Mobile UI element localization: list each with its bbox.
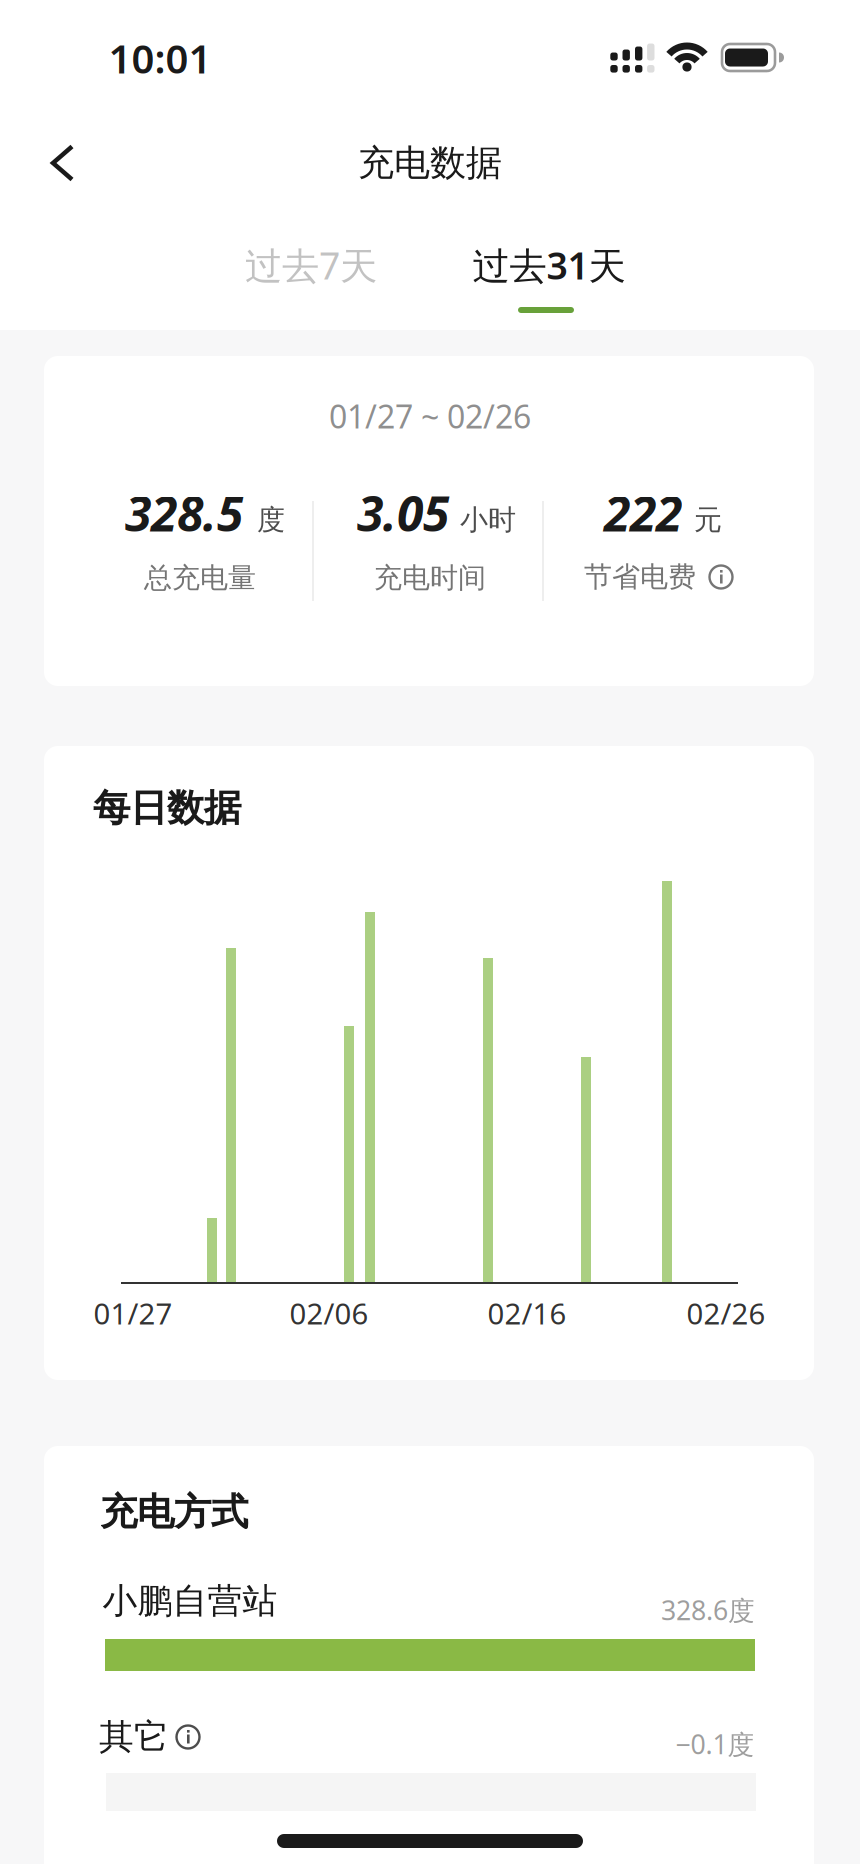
staticText: 过去31天 (472, 240, 625, 290)
button[interactable] (708, 564, 734, 590)
staticText: 度 (257, 503, 285, 537)
staticText: 222 (604, 481, 682, 545)
button[interactable] (175, 1724, 201, 1750)
button[interactable]: 过去7天 (201, 230, 421, 300)
staticText: −0.1度 (675, 1726, 754, 1762)
staticText: 01/27 (93, 1293, 172, 1332)
staticText: 其它 (99, 1716, 169, 1758)
staticText: 过去7天 (245, 240, 377, 290)
staticText: 充电时间 (374, 561, 486, 595)
staticText: 02/26 (686, 1293, 765, 1332)
button[interactable]: 过去31天 (434, 230, 664, 300)
staticText: 小鹏自营站 (102, 1580, 277, 1622)
staticText: 充电数据 (358, 141, 502, 185)
staticText: 328.5 (125, 481, 243, 545)
staticText: 元 (694, 503, 722, 537)
staticText: 充电方式 (100, 1489, 248, 1535)
staticText: 10:01 (108, 31, 211, 84)
button[interactable] (31, 132, 91, 193)
staticText: 328.6度 (661, 1592, 755, 1628)
staticText: 02/06 (289, 1293, 368, 1332)
staticText: 02/16 (487, 1293, 566, 1332)
staticText: 小时 (460, 503, 516, 537)
staticText: 节省电费 (584, 560, 696, 594)
staticText: 01/27 ~ 02/26 (329, 395, 531, 437)
staticText: 3.05 (357, 481, 449, 545)
staticText: 每日数据 (93, 785, 241, 831)
staticText: 总充电量 (144, 561, 256, 595)
